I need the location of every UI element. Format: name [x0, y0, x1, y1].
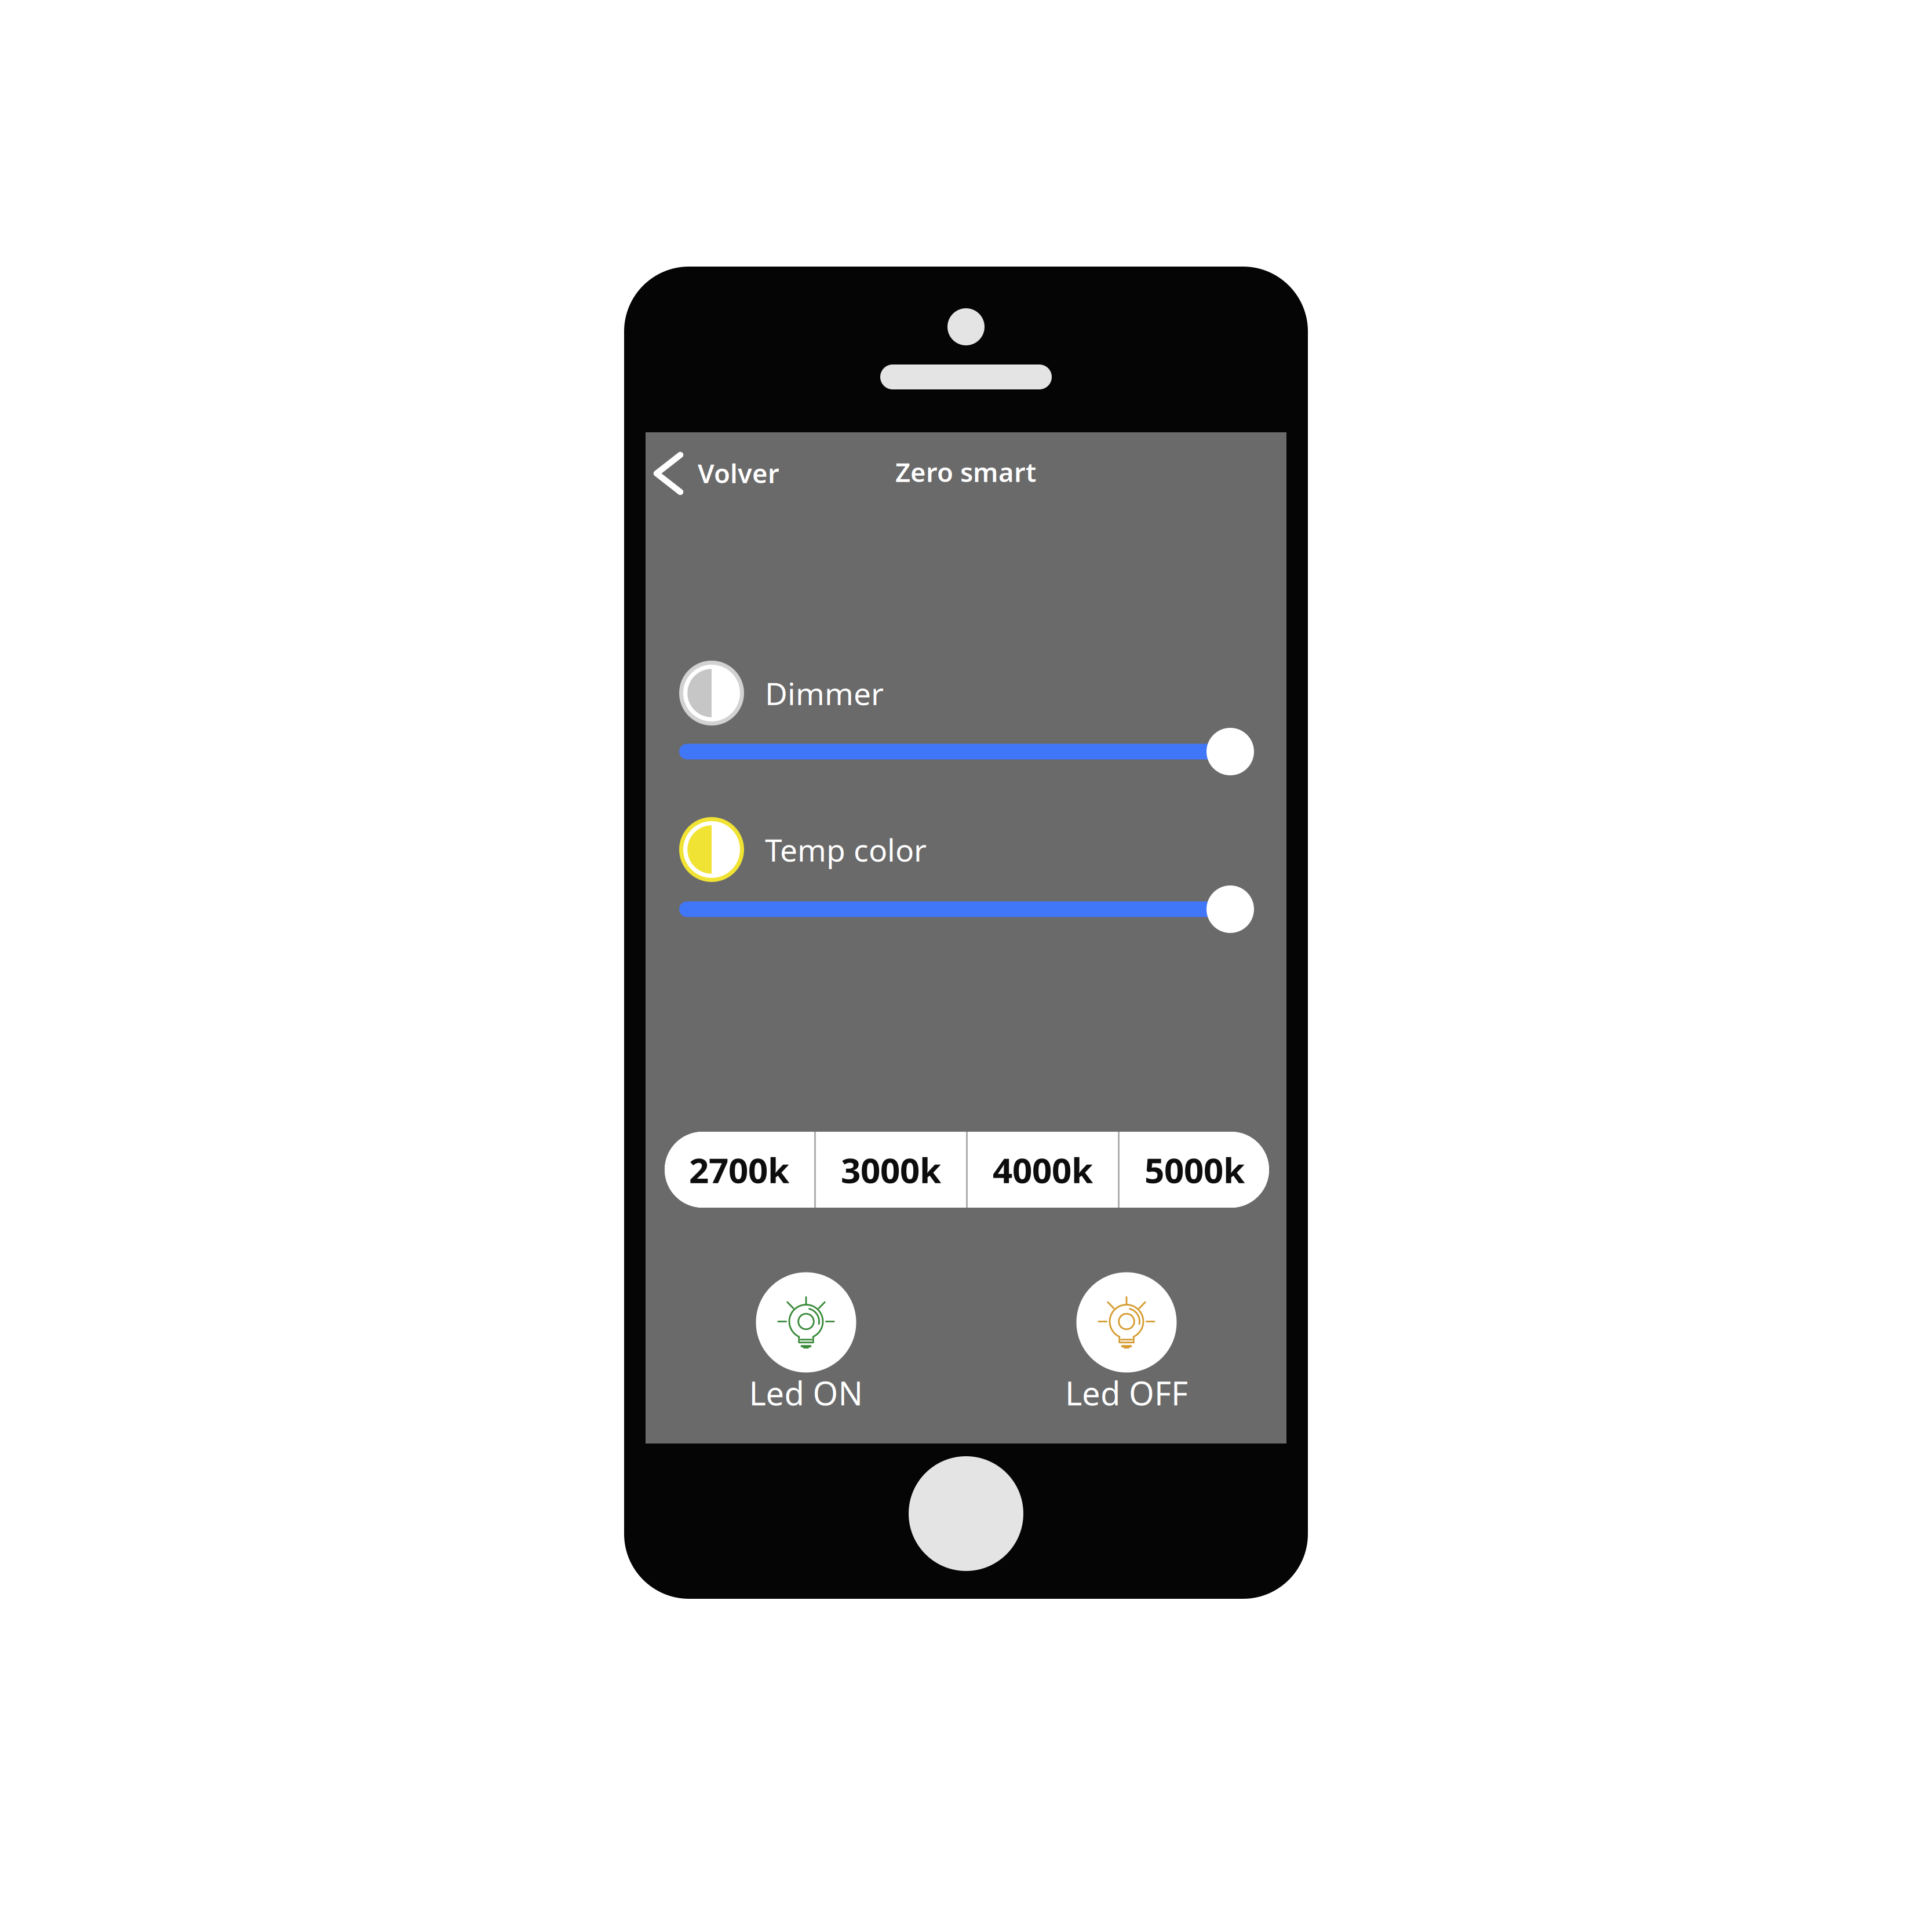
button[interactable]: Led ON — [719, 1274, 893, 1412]
staticText: 4000k — [993, 1147, 1093, 1193]
staticText: 5000k — [1144, 1147, 1245, 1193]
staticText: Led ON — [749, 1371, 863, 1414]
staticText: Led OFF — [1065, 1371, 1188, 1414]
staticText: 2700k — [689, 1147, 789, 1193]
button[interactable]: Colour temperature level — [679, 885, 1254, 933]
button[interactable]: 3000k — [816, 1132, 966, 1208]
button[interactable]: Dimmer level — [679, 728, 1254, 775]
button[interactable]: Volver — [646, 432, 790, 490]
button[interactable]: Home — [909, 1456, 1023, 1571]
staticText: Temp color — [765, 829, 927, 870]
button[interactable]: 4000k — [968, 1132, 1118, 1208]
staticText: 3000k — [841, 1147, 941, 1193]
button[interactable]: 5000k — [1120, 1132, 1270, 1208]
staticText: Zero smart — [895, 454, 1036, 489]
staticText: Dimmer — [765, 673, 884, 714]
staticText: Volver — [698, 455, 779, 490]
button[interactable]: Led OFF — [1040, 1274, 1213, 1412]
button[interactable]: 2700k — [664, 1132, 814, 1208]
